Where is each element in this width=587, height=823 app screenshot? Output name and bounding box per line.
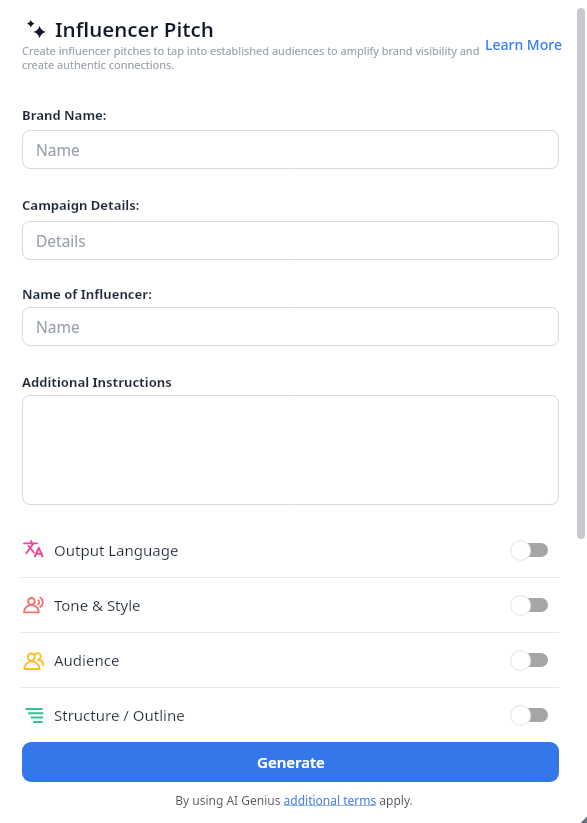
- button[interactable]: Generate: [22, 742, 559, 782]
- button[interactable]: Structure / Outline: [20, 688, 548, 742]
- staticText: Influencer Pitch: [55, 15, 214, 43]
- staticText: Campaign Details:: [22, 196, 140, 214]
- button[interactable]: Output Language: [20, 523, 548, 577]
- button[interactable]: Details: [22, 221, 559, 260]
- staticText: Name of Influencer:: [22, 285, 152, 303]
- button[interactable]: Tone & Style: [20, 578, 548, 632]
- staticText: Output Language: [54, 540, 179, 560]
- staticText: Audience: [54, 650, 120, 670]
- button[interactable]: Learn More: [485, 35, 562, 54]
- staticText: Structure / Outline: [54, 705, 185, 725]
- staticText: Details: [36, 230, 86, 251]
- staticText: Additional Instructions: [22, 373, 172, 391]
- button[interactable]: By using AI Genius additional terms appl…: [175, 792, 413, 808]
- staticText: Tone & Style: [54, 595, 141, 615]
- staticText: Generate: [257, 752, 325, 772]
- staticText: Name: [36, 316, 80, 337]
- button[interactable]: Audience: [20, 633, 548, 687]
- button[interactable]: Name: [22, 307, 559, 346]
- button[interactable]: Name: [22, 130, 559, 169]
- staticText: Name: [36, 139, 80, 160]
- staticText: Create influencer pitches to tap into es…: [22, 43, 480, 72]
- button[interactable]: [22, 395, 559, 505]
- staticText: Brand Name:: [22, 106, 107, 124]
